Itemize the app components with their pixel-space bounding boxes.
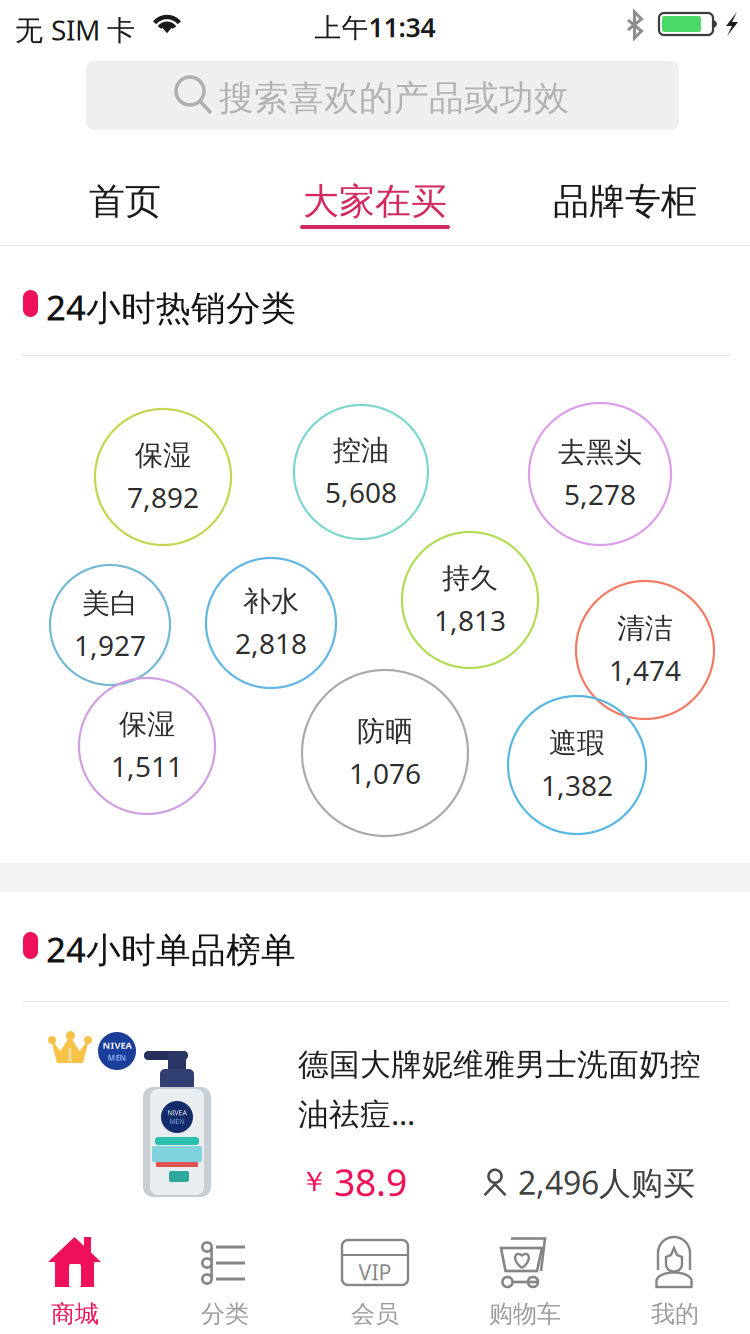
staticText: 5,278 [564,476,636,513]
button[interactable]: 品牌专柜 [500,147,750,246]
staticText: 保湿 [119,707,175,742]
button[interactable]: 首页 [0,147,250,246]
staticText: 遮瑕 [549,726,605,761]
button[interactable]: 去黑头 [529,403,671,545]
staticText: 上午11:34 [314,9,435,45]
staticText: 我的 [651,1299,699,1329]
staticText: 24小时热销分类 [46,284,296,330]
staticText: 2,496人购买 [518,1161,695,1203]
staticText: 分类 [201,1299,249,1329]
staticText: 德国大牌妮维雅男士洗面奶控 [298,1046,701,1084]
button[interactable]: 大家在买 [250,147,500,246]
staticText: 1,813 [434,602,506,639]
button[interactable]: 遮瑕 [508,696,646,834]
staticText: 美白 [82,586,138,621]
button[interactable]: 控油 [294,405,428,539]
button[interactable]: 分类 [150,1217,300,1334]
staticText: 2,818 [235,625,307,662]
staticText: 会员 [351,1299,399,1329]
button[interactable]: NIVEA [0,1002,750,1217]
staticText: 搜索喜欢的产品或功效 [219,77,569,120]
staticText: 商城 [51,1299,99,1329]
button[interactable]: 持久 [402,532,538,668]
staticText: 24小时单品榜单 [46,926,296,972]
button[interactable]: 商城 [0,1217,150,1334]
staticText: 补水 [243,584,299,619]
staticText: 1,474 [609,652,681,689]
staticText: 38.9 [334,1157,407,1207]
staticText: 1,511 [111,748,183,785]
button[interactable]: 补水 [206,558,336,688]
staticText: 购物车 [489,1299,561,1329]
button[interactable]: 防晒 [302,670,468,836]
staticText: NIVEA [102,1039,131,1051]
staticText: 7,892 [127,479,199,516]
staticText: MEN [169,1117,184,1126]
staticText: 防晒 [357,714,413,749]
staticText: 去黑头 [558,435,642,470]
staticText: 持久 [442,561,498,596]
button[interactable]: VIP [300,1217,450,1334]
button[interactable]: 搜索喜欢的产品或功效 [86,61,679,130]
staticText: 品牌专柜 [553,179,697,224]
staticText: 保湿 [135,438,191,473]
button[interactable]: 购物车 [450,1217,600,1334]
button[interactable]: 我的 [600,1217,750,1334]
staticText: 油祛痘... [298,1093,415,1134]
staticText: 清洁 [617,611,673,646]
staticText: NIVEA [167,1108,186,1117]
staticText: 1,076 [349,755,421,792]
staticText: ￥ [300,1165,328,1199]
staticText: 5,608 [325,474,397,511]
staticText: 1,927 [74,627,146,664]
staticText: MEN [107,1052,126,1063]
staticText: 1,382 [541,767,613,804]
staticText: 首页 [89,179,161,224]
staticText: 控油 [333,433,389,468]
button[interactable]: 美白 [50,565,170,685]
button[interactable]: 清洁 [576,581,714,719]
staticText: 大家在买 [303,179,447,224]
button[interactable]: 保湿 [95,409,231,545]
button[interactable]: 保湿 [79,678,215,814]
staticText: 无 SIM 卡 [15,11,135,48]
staticText: VIP [358,1258,391,1286]
